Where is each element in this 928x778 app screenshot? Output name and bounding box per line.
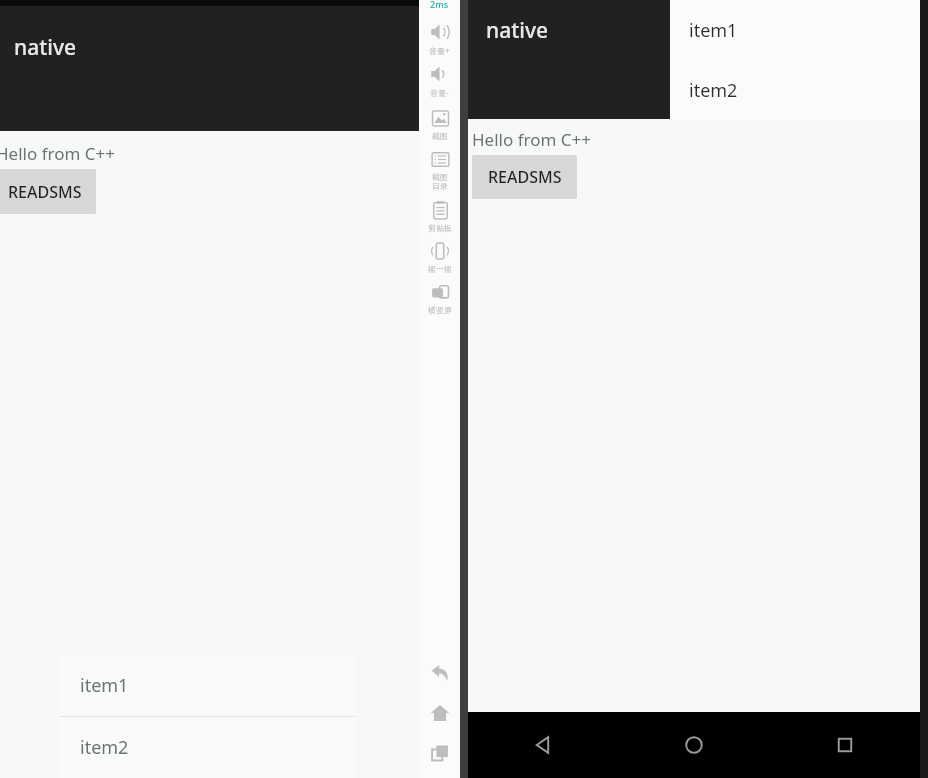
staticText: item1 — [689, 18, 738, 43]
button[interactable]: Home — [618, 712, 769, 778]
button[interactable]: item2 — [670, 60, 920, 120]
staticText: 截图 — [432, 131, 448, 141]
button[interactable]: 横竖屏 — [419, 280, 460, 315]
staticText: item1 — [80, 673, 129, 698]
button[interactable]: 截图 目录 — [419, 147, 460, 192]
staticText: item2 — [689, 78, 738, 103]
staticText: item2 — [80, 735, 129, 760]
staticText: 剪贴板 — [428, 223, 452, 233]
staticText: READSMS — [488, 166, 562, 188]
staticText: 音量- — [430, 87, 449, 98]
staticText: 摇一摇 — [428, 264, 452, 274]
button[interactable]: Back — [468, 712, 618, 778]
button[interactable]: Home — [423, 696, 457, 730]
button[interactable]: item1 — [670, 0, 920, 60]
staticText: native — [14, 33, 77, 62]
staticText: 横竖屏 — [428, 305, 452, 315]
button[interactable]: READSMS — [472, 155, 577, 199]
staticText: Hello from C++ — [472, 128, 591, 151]
button[interactable]: item1 — [60, 655, 355, 716]
button[interactable]: 音量- — [419, 62, 460, 98]
button[interactable]: READSMS — [0, 169, 96, 214]
staticText: 2ms — [430, 0, 449, 10]
staticText: Hello from C++ — [0, 142, 115, 165]
button[interactable]: 摇一摇 — [419, 239, 460, 274]
staticText: 截图 目录 — [432, 172, 448, 192]
button[interactable]: item2 — [60, 717, 355, 778]
button[interactable]: Recents — [423, 736, 457, 770]
button[interactable]: 音量+ — [419, 20, 460, 56]
button[interactable]: More options — [401, 25, 449, 73]
staticText: 音量+ — [429, 45, 450, 56]
button[interactable]: 剪贴板 — [419, 198, 460, 233]
button[interactable]: Back — [423, 656, 457, 690]
button[interactable]: 截图 — [419, 106, 460, 141]
staticText: READSMS — [8, 181, 82, 203]
button[interactable]: Recents — [769, 712, 920, 778]
staticText: native — [486, 16, 549, 45]
